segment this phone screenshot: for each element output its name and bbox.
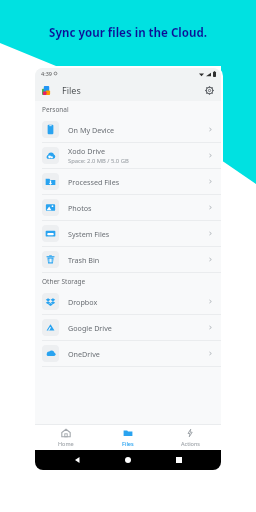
staticText: Sync your files in the Cloud. (0, 25, 256, 41)
staticText: Other Storage (42, 277, 86, 286)
staticText: 4:39 (41, 70, 52, 77)
staticText: OneDrive (68, 349, 100, 359)
button[interactable]: Photos (35, 195, 221, 220)
staticText: Files (122, 440, 134, 447)
button[interactable]: Processed Files (35, 169, 221, 194)
button[interactable]: Home (120, 452, 136, 468)
staticText: On My Device (68, 125, 115, 135)
staticText: Files (62, 84, 81, 96)
staticText: Dropbox (68, 297, 98, 307)
button[interactable]: On My Device (35, 117, 221, 142)
staticText: Google Drive (68, 323, 112, 333)
button[interactable]: Back (70, 452, 86, 468)
staticText: System Files (68, 229, 110, 239)
button[interactable]: Home (35, 425, 97, 450)
button[interactable]: System Files (35, 221, 221, 246)
button[interactable]: Settings (202, 83, 216, 97)
staticText: Xodo Drive (68, 146, 105, 156)
staticText: Home (58, 440, 74, 447)
button[interactable]: Xodo Drive (35, 143, 221, 168)
button[interactable]: Trash Bin (35, 247, 221, 272)
button[interactable]: Actions (159, 425, 221, 450)
button[interactable]: OneDrive (35, 341, 221, 366)
staticText: Trash Bin (68, 255, 100, 265)
staticText: Processed Files (68, 177, 120, 187)
staticText: Space: 2.0 MB / 5.0 GB (68, 157, 129, 165)
button[interactable]: Files (97, 425, 159, 450)
button[interactable]: Dropbox (35, 289, 221, 314)
button[interactable]: Google Drive (35, 315, 221, 340)
staticText: Actions (181, 440, 200, 447)
staticText: Photos (68, 203, 92, 213)
button[interactable]: Recents (171, 452, 187, 468)
staticText: Personal (42, 105, 69, 114)
